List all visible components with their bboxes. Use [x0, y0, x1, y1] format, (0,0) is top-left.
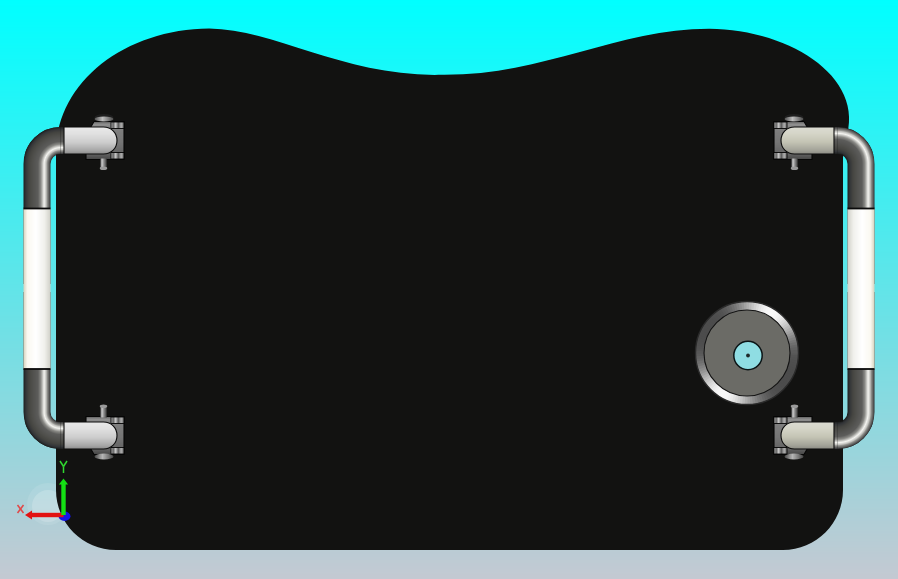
button[interactable]: 3D model viewport [0, 0, 898, 579]
